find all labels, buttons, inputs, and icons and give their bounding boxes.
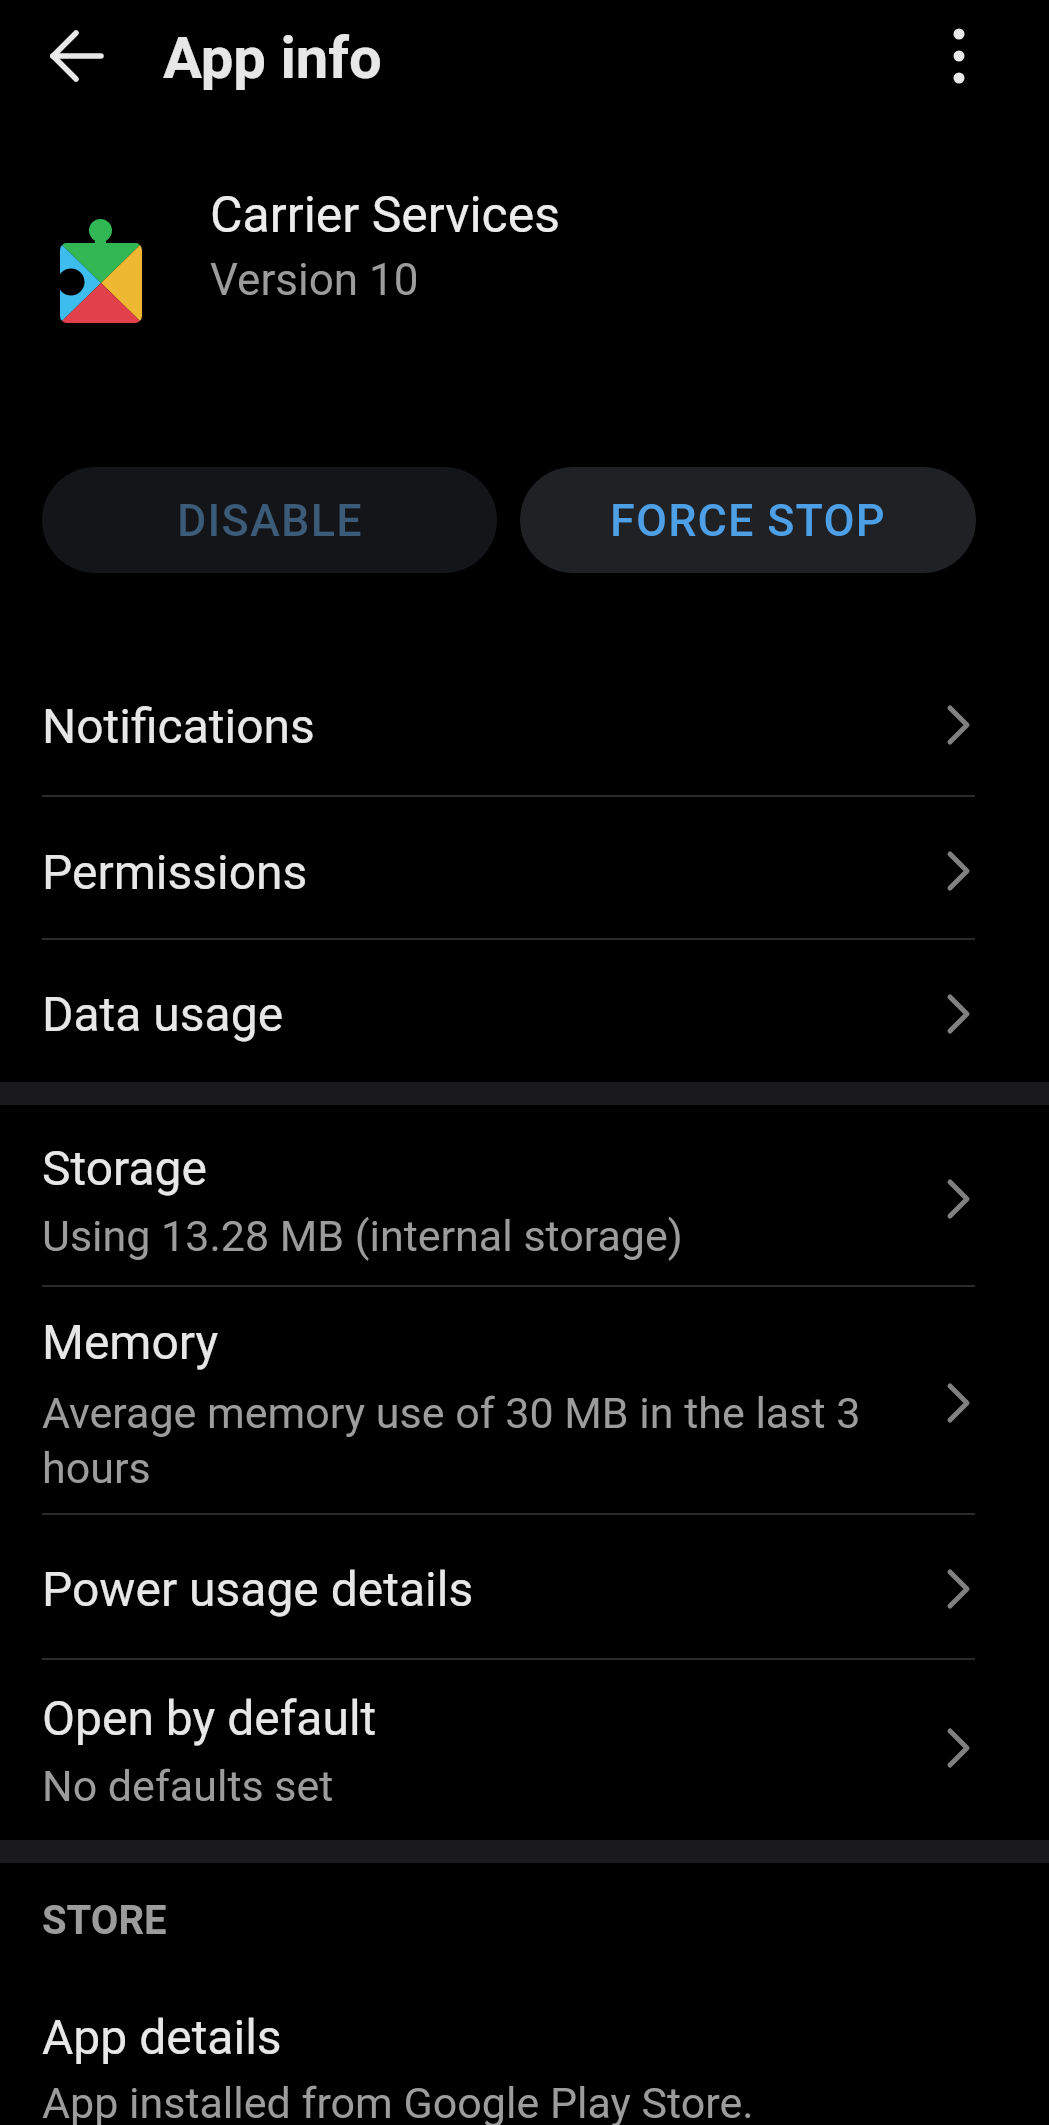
staticText: FORCE STOP bbox=[610, 494, 886, 547]
staticText: No defaults set bbox=[42, 1761, 334, 1811]
staticText: Carrier Services bbox=[210, 186, 561, 245]
staticText: Permissions bbox=[42, 844, 308, 900]
staticText: Version 10 bbox=[210, 254, 419, 306]
staticText: Using 13.28 MB (internal storage) bbox=[42, 1211, 683, 1261]
staticText: Storage bbox=[42, 1140, 207, 1196]
button[interactable] bbox=[30, 16, 120, 100]
staticText: Average memory use of 30 MB in the last … bbox=[42, 1388, 861, 1438]
staticText: hours bbox=[42, 1443, 151, 1493]
button[interactable]: Power usage details bbox=[0, 1515, 1049, 1658]
button[interactable]: Permissions bbox=[0, 797, 1049, 938]
button[interactable]: App details bbox=[0, 1975, 1049, 2125]
button[interactable]: Data usage bbox=[0, 940, 1049, 1082]
staticText: Power usage details bbox=[42, 1561, 474, 1617]
staticText: App details bbox=[42, 2009, 282, 2065]
button[interactable] bbox=[928, 14, 990, 102]
button[interactable]: Memory bbox=[0, 1287, 1049, 1513]
button[interactable]: FORCE STOP bbox=[520, 467, 976, 573]
staticText: Notifications bbox=[42, 698, 315, 754]
staticText: STORE bbox=[42, 1897, 167, 1944]
staticText: App info bbox=[163, 24, 382, 92]
staticText: Memory bbox=[42, 1314, 219, 1370]
staticText: Data usage bbox=[42, 986, 284, 1042]
button[interactable]: Open by default bbox=[0, 1660, 1049, 1840]
button[interactable]: Storage bbox=[0, 1105, 1049, 1285]
button[interactable]: DISABLE bbox=[42, 467, 497, 573]
staticText: Open by default bbox=[42, 1690, 377, 1746]
button[interactable]: Notifications bbox=[0, 658, 1049, 795]
staticText: DISABLE bbox=[177, 494, 363, 547]
staticText: App installed from Google Play Store. bbox=[42, 2078, 754, 2125]
